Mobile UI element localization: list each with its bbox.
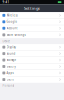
staticText: Sound	[7, 52, 16, 55]
staticText: Display	[7, 45, 16, 49]
button[interactable]: Users	[0, 76, 64, 83]
staticText: Settings	[24, 6, 40, 11]
staticText: Device	[2, 39, 10, 43]
staticText: Apps	[7, 71, 14, 75]
button[interactable]: Battery	[0, 63, 64, 70]
staticText: More settings	[7, 33, 26, 37]
button[interactable]: Wireless	[0, 12, 64, 19]
button[interactable]: Display	[0, 44, 64, 51]
staticText: Personal	[2, 84, 14, 87]
button[interactable]: Google	[0, 19, 64, 25]
button[interactable]: Apps	[0, 70, 64, 76]
staticText: Users	[7, 78, 14, 81]
button[interactable]: Account	[0, 25, 64, 32]
staticText: 9:41	[3, 0, 10, 4]
button[interactable]: Sound	[0, 51, 64, 57]
button[interactable]: More settings	[0, 32, 64, 38]
staticText: Google	[7, 20, 18, 23]
staticText: Storage	[7, 58, 17, 62]
button[interactable]: Storage	[0, 57, 64, 63]
staticText: Wireless	[7, 14, 18, 17]
staticText: Account	[7, 26, 18, 30]
staticText: Battery	[7, 65, 16, 68]
